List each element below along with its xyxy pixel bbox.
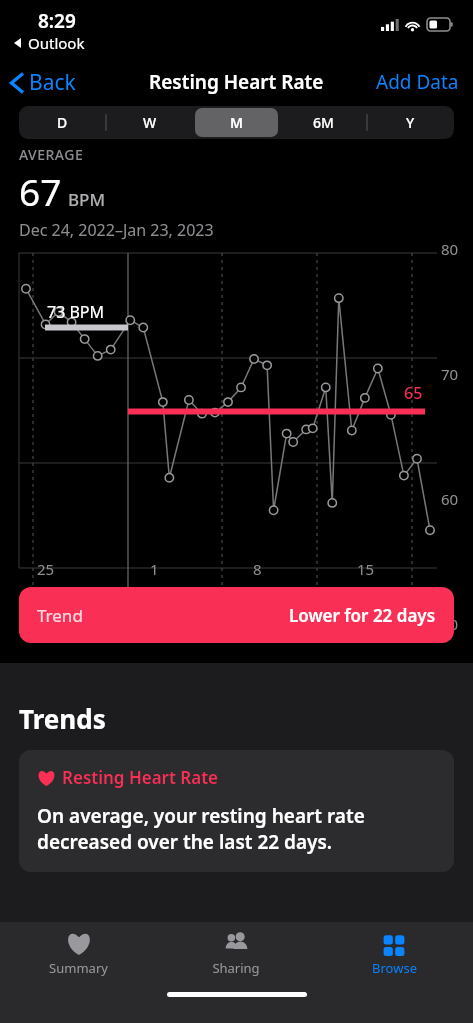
staticText: AVERAGE xyxy=(19,145,84,164)
staticText: 73 BPM xyxy=(47,301,105,323)
staticText: 6M xyxy=(313,113,334,132)
button[interactable]: Summary xyxy=(0,922,157,992)
button[interactable]: Back xyxy=(0,62,86,103)
staticText: 65 xyxy=(404,382,423,404)
staticText: 70 xyxy=(441,364,459,384)
staticText: Summary xyxy=(49,959,108,977)
staticText: 8:29 xyxy=(38,8,76,34)
staticText: Sharing xyxy=(212,959,260,977)
button[interactable]: 6M xyxy=(282,108,365,137)
staticText: Dec 24, 2022–Jan 23, 2023 xyxy=(19,219,214,241)
staticText: 1 xyxy=(150,559,159,579)
button[interactable]: D xyxy=(21,108,104,137)
staticText: Trend xyxy=(37,604,83,627)
staticText: 25 xyxy=(37,559,55,579)
button[interactable]: Sharing xyxy=(157,922,315,992)
button[interactable]: Y xyxy=(369,108,452,137)
button[interactable]: Resting Heart Rate xyxy=(19,750,454,872)
staticText: Resting Heart Rate xyxy=(149,69,324,95)
button[interactable]: M xyxy=(195,108,278,137)
button[interactable]: W xyxy=(108,108,191,137)
staticText: 8 xyxy=(253,559,262,579)
staticText: Back xyxy=(29,68,76,97)
staticText: M xyxy=(230,113,244,132)
staticText: Y xyxy=(406,113,415,132)
staticText: Resting Heart Rate xyxy=(62,766,219,789)
staticText: W xyxy=(143,113,157,132)
staticText: 15 xyxy=(357,559,375,579)
staticText: 67 xyxy=(19,166,62,216)
staticText: Lower for 22 days xyxy=(289,604,436,627)
staticText: BPM xyxy=(68,188,106,211)
button[interactable]: Trend xyxy=(19,587,454,643)
staticText: Trends xyxy=(19,701,106,736)
button[interactable]: Add Data xyxy=(362,61,473,103)
staticText: 50 xyxy=(441,614,459,634)
staticText: Outlook xyxy=(28,33,85,53)
staticText: On average, your resting heart rate decr… xyxy=(37,803,436,854)
staticText: Browse xyxy=(372,959,417,977)
staticText: 60 xyxy=(441,489,459,509)
staticText: 80 xyxy=(441,239,459,259)
staticText: D xyxy=(57,113,68,132)
button[interactable]: Browse xyxy=(315,922,473,992)
